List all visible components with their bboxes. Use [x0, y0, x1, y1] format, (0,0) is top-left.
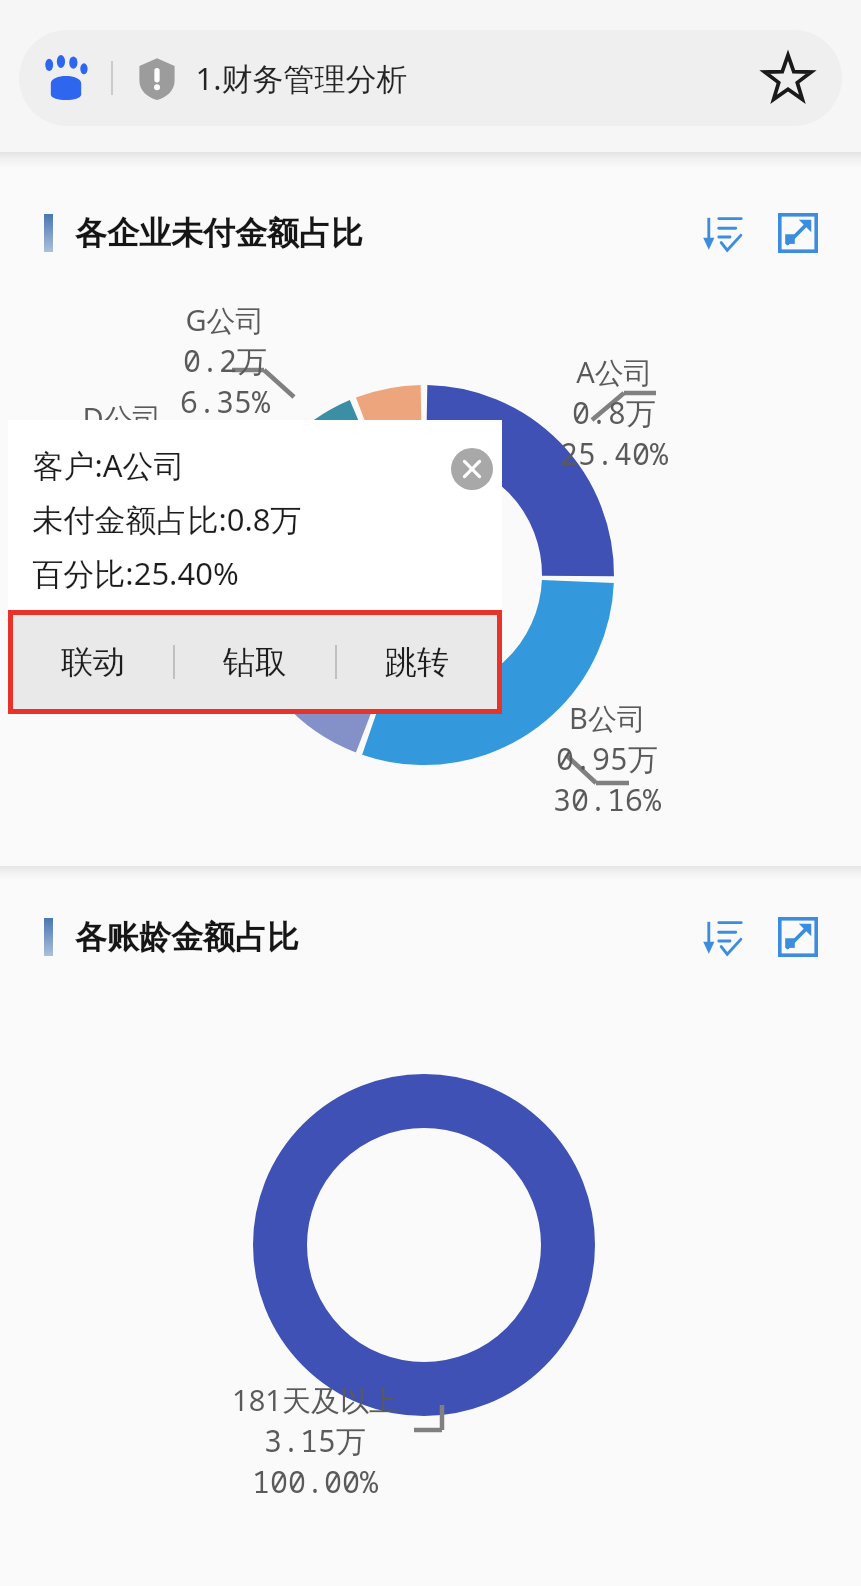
- staticText: B公司: [569, 698, 646, 738]
- staticText: 0.8万: [572, 392, 656, 433]
- button[interactable]: 钻取: [175, 615, 335, 709]
- staticText: D公司: [82, 398, 162, 438]
- staticText: 联动: [61, 642, 125, 682]
- button[interactable]: 关闭: [451, 448, 493, 490]
- staticText: 客户:A公司: [32, 444, 185, 486]
- staticText: 30.16%: [553, 779, 661, 820]
- staticText: 6.35%: [180, 381, 270, 422]
- button[interactable]: 跳转: [337, 615, 497, 709]
- staticText: 3.15万: [264, 1420, 366, 1461]
- staticText: G公司: [185, 300, 265, 340]
- staticText: 25.40%: [68, 476, 176, 517]
- button[interactable]: 1.财务管理分析: [19, 30, 842, 126]
- staticText: A公司: [576, 352, 653, 392]
- staticText: 1.财务管理分析: [195, 57, 408, 99]
- button[interactable]: 联动: [13, 615, 173, 709]
- staticText: 百分比:25.40%: [32, 552, 239, 594]
- staticText: 0.2万: [183, 340, 267, 381]
- button[interactable]: 排序: [695, 206, 749, 260]
- staticText: 跳转: [385, 642, 449, 682]
- staticText: 未付金额占比:0.8万: [32, 498, 302, 540]
- staticText: 各企业未付金额占比: [75, 213, 363, 253]
- button[interactable]: 排序: [695, 910, 749, 964]
- button[interactable]: 全屏: [771, 910, 825, 964]
- button[interactable]: 收藏: [758, 48, 818, 108]
- staticText: 25.40%: [560, 433, 668, 474]
- button[interactable]: 全屏: [771, 206, 825, 260]
- staticText: 100.00%: [252, 1461, 378, 1502]
- staticText: 各账龄金额占比: [75, 917, 299, 957]
- staticText: 钻取: [223, 642, 287, 682]
- staticText: 181天及以上: [232, 1380, 398, 1420]
- staticText: 0.95万: [556, 738, 658, 779]
